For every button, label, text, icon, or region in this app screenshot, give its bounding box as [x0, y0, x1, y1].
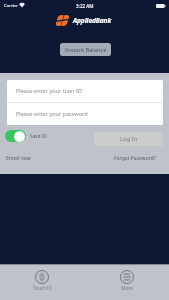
staticText: Instant Balance: [65, 46, 107, 54]
staticText: Please enter your password: [16, 110, 88, 117]
button[interactable]: Please enter your password: [7, 103, 163, 125]
staticText: 3:22 AM: [76, 3, 94, 9]
button[interactable]: Forgot Password?: [114, 155, 156, 162]
staticText: Touch ID: [33, 285, 52, 291]
button[interactable]: Enroll now: [6, 155, 31, 162]
staticText: Carrier: [4, 3, 18, 9]
staticText: Save ID: [30, 133, 47, 140]
button[interactable]: Log In: [94, 132, 163, 146]
staticText: Please enter your User ID: [16, 87, 82, 94]
staticText: Log In: [120, 135, 138, 143]
button[interactable]: More: [84, 265, 169, 300]
button[interactable]: Save ID: [5, 130, 47, 142]
staticText: AppliedBank: [73, 16, 112, 25]
button[interactable]: Please enter your User ID: [7, 80, 163, 102]
button[interactable]: Touch ID: [0, 265, 84, 300]
staticText: More: [121, 285, 133, 291]
button[interactable]: Instant Balance: [60, 43, 111, 56]
